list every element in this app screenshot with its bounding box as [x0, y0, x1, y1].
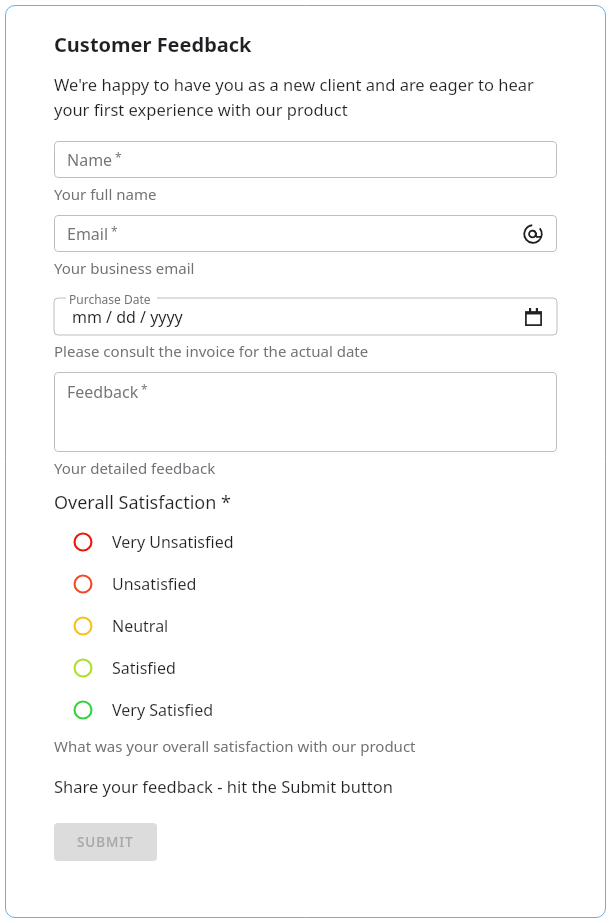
staticText: mm / dd / yyyy — [72, 306, 183, 328]
staticText: We're happy to have you as a new client … — [54, 73, 557, 121]
button[interactable]: Unsatisfied — [54, 563, 557, 605]
button[interactable]: Satisfied — [54, 647, 557, 689]
staticText: Email — [67, 223, 109, 245]
button[interactable]: Open calendar picker — [522, 306, 544, 328]
staticText: Overall Satisfaction * — [54, 490, 231, 515]
staticText: Share your feedback - hit the Submit but… — [54, 775, 393, 797]
staticText: Purchase Date — [69, 291, 151, 307]
staticText: Very Satisfied — [112, 699, 214, 721]
button[interactable]: Email — [54, 215, 557, 252]
staticText: Neutral — [112, 615, 169, 637]
staticText: Unsatisfied — [112, 573, 197, 595]
staticText: Very Unsatisfied — [112, 531, 234, 553]
staticText: Your detailed feedback — [54, 458, 216, 478]
button[interactable]: Feedback — [54, 372, 557, 452]
button[interactable]: Purchase Date — [54, 289, 557, 335]
staticText: * — [141, 381, 148, 397]
staticText: Your full name — [54, 184, 157, 204]
button[interactable]: Very Unsatisfied — [54, 521, 557, 563]
other: Email address — [522, 223, 544, 245]
staticText: * — [111, 223, 118, 239]
staticText: * — [115, 149, 122, 165]
staticText: Satisfied — [112, 657, 176, 679]
button[interactable]: SUBMIT — [54, 823, 157, 861]
staticText: Feedback — [67, 381, 139, 403]
staticText: What was your overall satisfaction with … — [54, 736, 416, 756]
staticText: SUBMIT — [77, 833, 134, 851]
button[interactable]: Very Satisfied — [54, 689, 557, 731]
staticText: Your business email — [54, 258, 195, 278]
button[interactable]: Neutral — [54, 605, 557, 647]
staticText: Name — [67, 149, 113, 171]
staticText: Please consult the invoice for the actua… — [54, 341, 369, 361]
staticText: Customer Feedback — [54, 31, 252, 58]
button[interactable]: Name — [54, 141, 557, 178]
